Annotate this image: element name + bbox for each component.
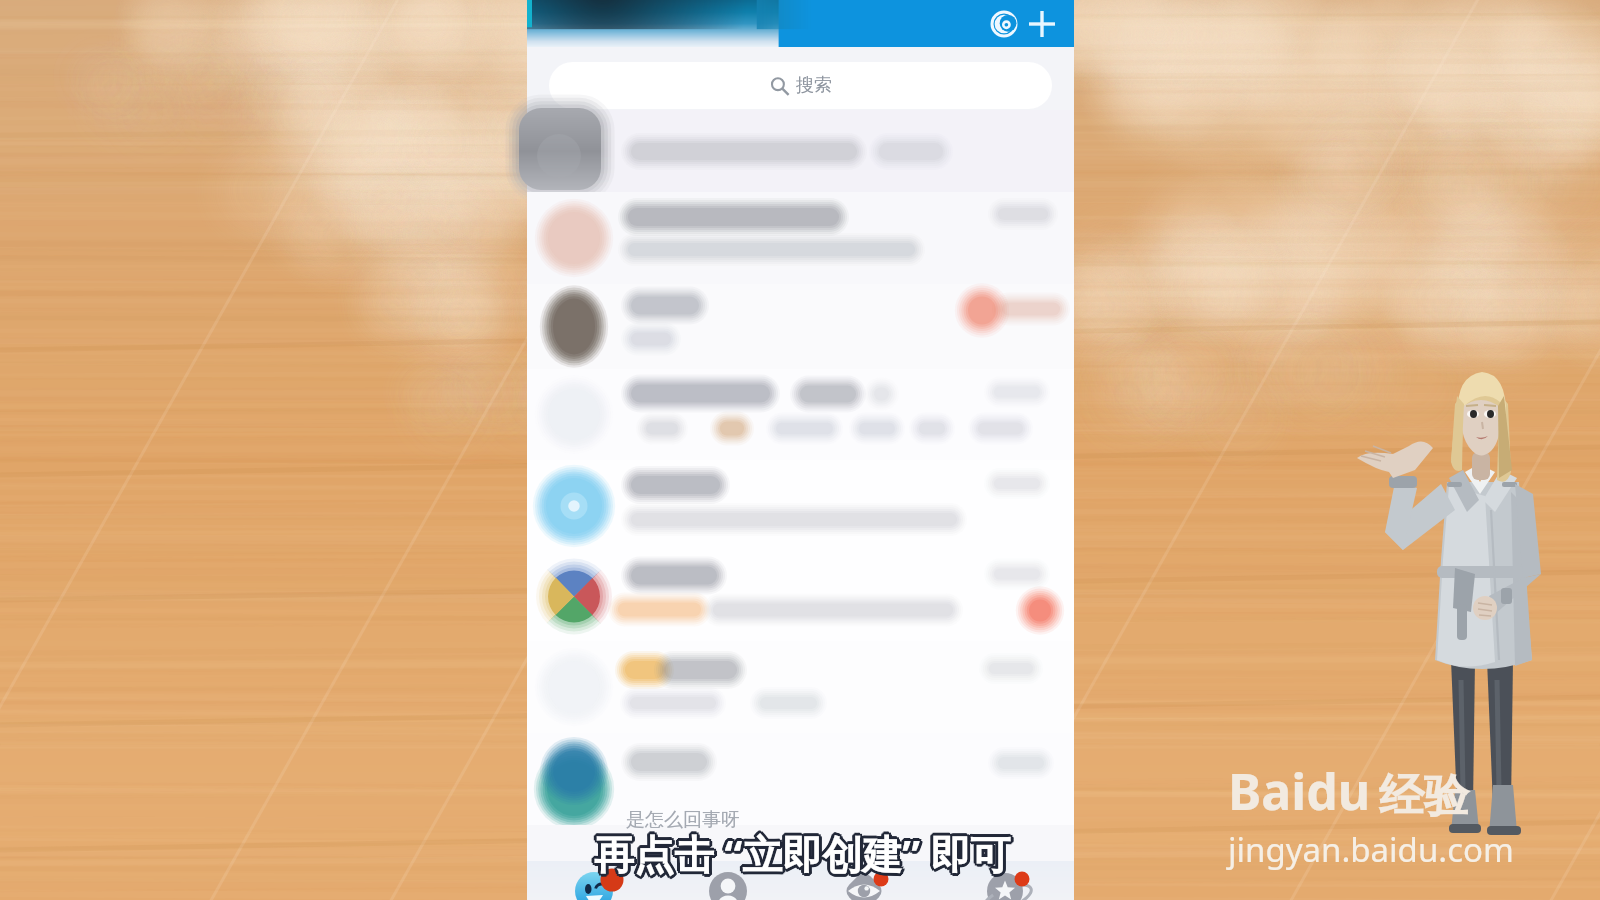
staticText: 再点击 “立即创建” 即可 bbox=[596, 828, 1013, 883]
staticText: 是怎么回事呀 bbox=[626, 808, 740, 832]
button[interactable] bbox=[527, 825, 1074, 861]
button[interactable]: Messages bbox=[527, 861, 664, 900]
button[interactable] bbox=[527, 733, 1074, 825]
button[interactable]: 搜索 bbox=[549, 62, 1052, 109]
staticText: 再点击 “立即创建” 即可 bbox=[592, 828, 1009, 883]
staticText: Baidu bbox=[1228, 757, 1371, 825]
button[interactable]: Add bbox=[1022, 4, 1062, 44]
button[interactable] bbox=[527, 110, 1074, 192]
staticText: 再点击 “立即创建” 即可 bbox=[594, 826, 1011, 881]
staticText: jingyan.baidu.com bbox=[1228, 827, 1514, 872]
staticText: 再点击 “立即创建” 即可 bbox=[593, 823, 1010, 878]
staticText: 搜索 bbox=[796, 74, 832, 97]
staticText: 再点击 “立即创建” 即可 bbox=[595, 829, 1012, 884]
button[interactable] bbox=[527, 460, 1074, 552]
button[interactable]: Moments bbox=[801, 861, 938, 900]
staticText: 再点击 “立即创建” 即可 bbox=[596, 824, 1013, 879]
button[interactable]: Space bbox=[938, 861, 1074, 900]
button[interactable] bbox=[527, 641, 1074, 733]
staticText: 再点击 “立即创建” 即可 bbox=[592, 824, 1009, 879]
button[interactable] bbox=[527, 284, 1074, 369]
staticText: 再点击 “立即创建” 即可 bbox=[594, 823, 1011, 878]
staticText: 再点击 “立即创建” 即可 bbox=[597, 827, 1014, 882]
staticText: 再点击 “立即创建” 即可 bbox=[591, 826, 1008, 881]
staticText: 再点击 “立即创建” 即可 bbox=[591, 825, 1008, 880]
button[interactable] bbox=[527, 192, 1074, 284]
staticText: 再点击 “立即创建” 即可 bbox=[597, 826, 1014, 881]
button[interactable] bbox=[527, 552, 1074, 641]
staticText: 经验 bbox=[1379, 768, 1469, 825]
button[interactable]: Contacts bbox=[664, 861, 801, 900]
button[interactable] bbox=[527, 369, 1074, 460]
button[interactable]: Night mode bbox=[986, 6, 1022, 42]
staticText: 再点击 “立即创建” 即可 bbox=[594, 829, 1011, 884]
